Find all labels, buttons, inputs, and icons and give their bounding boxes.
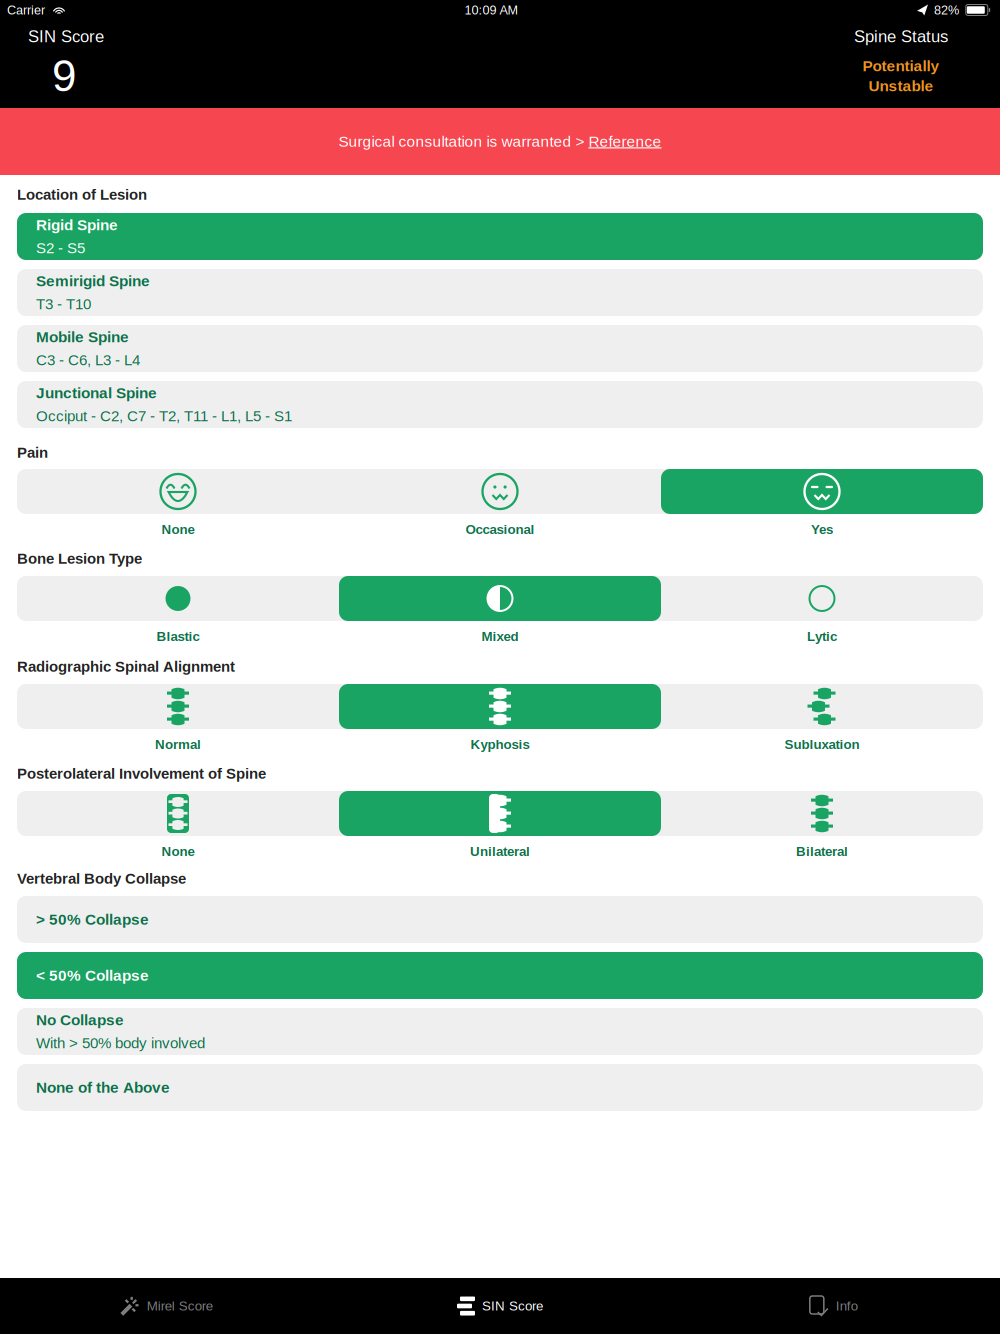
staticText: Kyphosis	[470, 737, 529, 752]
staticText: T3 - T10	[36, 296, 91, 312]
button[interactable]	[661, 469, 983, 514]
staticText: Vertebral Body Collapse	[17, 870, 186, 887]
button[interactable]: < 50% Collapse	[17, 952, 983, 999]
staticText: None	[161, 844, 194, 859]
button[interactable]: > 50% Collapse	[17, 896, 983, 943]
button[interactable]: Info	[667, 1278, 1000, 1334]
staticText: Yes	[811, 522, 833, 537]
button[interactable]: Mirel Score	[0, 1278, 333, 1334]
button[interactable]: Junctional Spine	[17, 381, 983, 428]
button[interactable]	[17, 469, 339, 514]
staticText: With > 50% body involved	[36, 1035, 205, 1051]
staticText: Spine Status	[854, 27, 948, 46]
staticText: No Collapse	[36, 1011, 124, 1028]
staticText: Mobile Spine	[36, 328, 129, 345]
staticText: Location of Lesion	[17, 186, 147, 203]
staticText: Mirel Score	[147, 1299, 213, 1313]
button[interactable]	[339, 576, 661, 621]
staticText: Blastic	[156, 629, 199, 644]
button[interactable]: Surgical consultation is warranted >	[0, 108, 1000, 175]
staticText: None of the Above	[36, 1079, 170, 1096]
button[interactable]: SIN Score	[333, 1278, 667, 1334]
staticText: Subluxation	[784, 737, 859, 752]
staticText: Radiographic Spinal Alignment	[17, 658, 235, 675]
button[interactable]	[339, 684, 661, 729]
staticText: < 50% Collapse	[36, 967, 149, 984]
button[interactable]: Rigid Spine	[17, 213, 983, 260]
button[interactable]	[661, 576, 983, 621]
button[interactable]: No Collapse	[17, 1008, 983, 1055]
staticText: Mixed	[481, 629, 518, 644]
staticText: Rigid Spine	[36, 216, 118, 233]
button[interactable]: Semirigid Spine	[17, 269, 983, 316]
staticText: Junctional Spine	[36, 384, 157, 401]
staticText: SIN Score	[482, 1299, 543, 1313]
staticText: Unilateral	[470, 844, 530, 859]
button[interactable]	[661, 684, 983, 729]
staticText: Posterolateral Involvement of Spine	[17, 765, 266, 782]
staticText: Occasional	[465, 522, 534, 537]
staticText: Normal	[155, 737, 201, 752]
staticText: None	[161, 522, 194, 537]
staticText: 82%	[934, 3, 959, 17]
staticText: > 50% Collapse	[36, 911, 149, 928]
button[interactable]	[339, 791, 661, 836]
button[interactable]	[17, 791, 339, 836]
button[interactable]	[339, 469, 661, 514]
staticText: C3 - C6, L3 - L4	[36, 352, 140, 368]
staticText: Bone Lesion Type	[17, 550, 142, 567]
staticText: SIN Score	[28, 27, 104, 46]
staticText: Lytic	[807, 629, 837, 644]
staticText: S2 - S5	[36, 240, 85, 256]
staticText: Pain	[17, 444, 48, 461]
staticText: Info	[836, 1299, 858, 1313]
staticText: Unstable	[868, 77, 933, 94]
staticText: Reference	[588, 133, 661, 150]
staticText: 10:09 AM	[464, 3, 518, 17]
staticText: Carrier	[7, 3, 45, 17]
button[interactable]: Mobile Spine	[17, 325, 983, 372]
staticText: 9	[52, 51, 76, 101]
button[interactable]: None of the Above	[17, 1064, 983, 1111]
staticText: Semirigid Spine	[36, 272, 150, 289]
staticText: Surgical consultation is warranted >	[338, 133, 588, 150]
button[interactable]	[661, 791, 983, 836]
staticText: Potentially	[862, 57, 939, 74]
staticText: Bilateral	[796, 844, 848, 859]
staticText: Occiput - C2, C7 - T2, T11 - L1, L5 - S1	[36, 408, 292, 424]
button[interactable]	[17, 576, 339, 621]
button[interactable]	[17, 684, 339, 729]
